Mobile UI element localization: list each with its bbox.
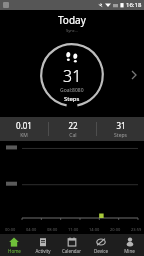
staticText: Steps xyxy=(114,132,127,139)
staticText: 00:00 xyxy=(5,227,16,232)
button[interactable]: Mine xyxy=(115,234,144,256)
staticText: 16:18 xyxy=(126,1,142,9)
staticText: KM xyxy=(20,132,28,139)
staticText: Mine xyxy=(124,248,135,254)
button[interactable]: 31 xyxy=(39,42,105,108)
staticText: Home xyxy=(8,248,21,254)
staticText: 23:59 xyxy=(131,227,142,232)
staticText: Cal xyxy=(69,132,77,139)
staticText: Steps xyxy=(64,95,80,103)
button[interactable]: Device xyxy=(86,234,115,256)
staticText: 0.01 xyxy=(16,120,32,131)
button[interactable]: Calendar xyxy=(57,234,86,256)
staticText: 31 xyxy=(116,120,126,131)
button[interactable]: Home xyxy=(0,234,28,256)
button[interactable]: 0.01 xyxy=(0,117,48,141)
staticText: Device xyxy=(94,248,108,254)
staticText: Today xyxy=(58,13,86,27)
staticText: 20:00 xyxy=(110,227,121,232)
staticText: Goal:8080 xyxy=(60,87,84,94)
button[interactable]: 31 xyxy=(97,117,144,141)
button[interactable]: 22 xyxy=(49,117,96,141)
staticText: Calendar xyxy=(62,248,81,254)
staticText: Activity xyxy=(35,248,51,254)
staticText: 08:00 xyxy=(47,227,58,232)
staticText: 22 xyxy=(68,120,78,131)
staticText: 31 xyxy=(63,65,82,87)
staticText: 14:00 xyxy=(89,227,100,232)
staticText: 11:00 xyxy=(68,227,79,232)
staticText: Sync... xyxy=(66,28,78,33)
staticText: 04:00 xyxy=(26,227,37,232)
button[interactable]: Activity xyxy=(28,234,57,256)
button[interactable]: Next day xyxy=(128,69,140,81)
